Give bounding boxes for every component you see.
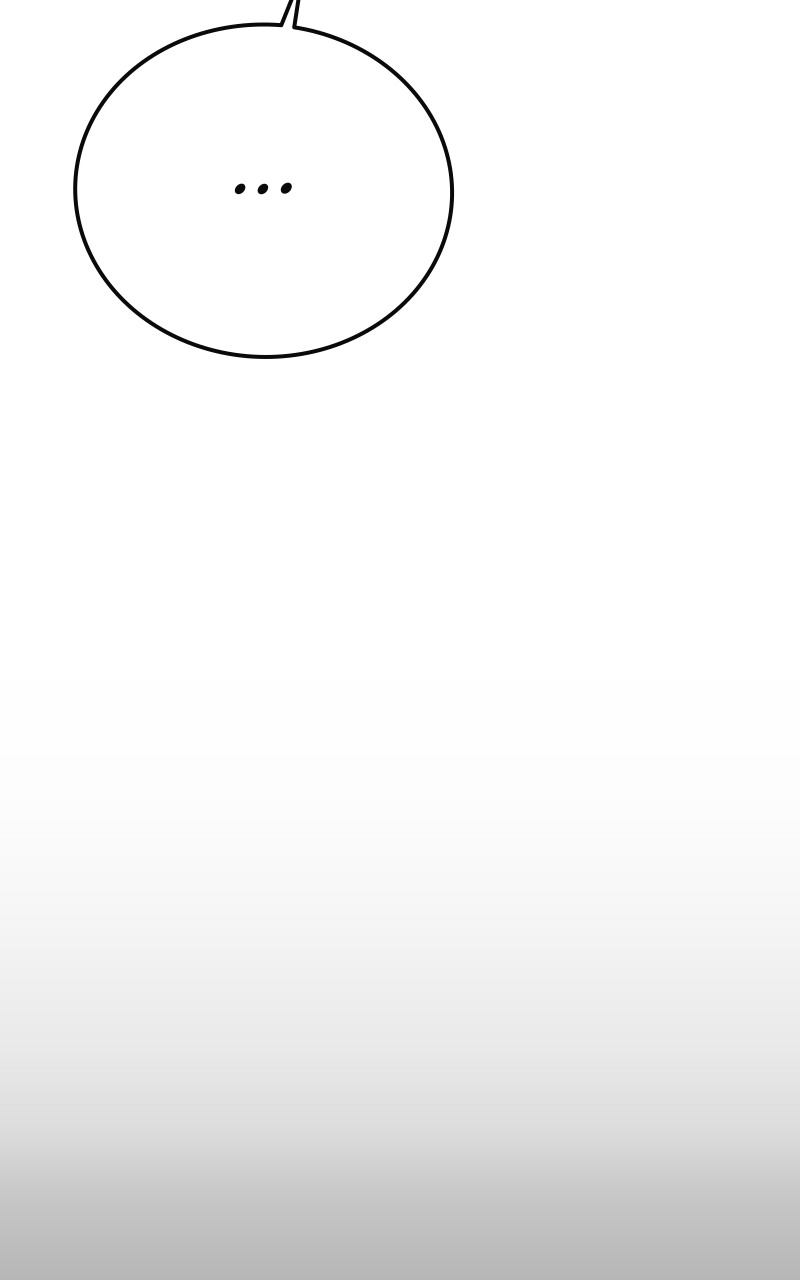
button[interactable]: Thinking: [0, 0, 800, 1280]
